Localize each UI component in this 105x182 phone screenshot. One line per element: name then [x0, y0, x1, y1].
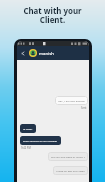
- staticText: hi sister: [23, 127, 33, 130]
- button[interactable]: Hey , i am very excited!: [55, 96, 88, 105]
- staticText: I need an app only video: [56, 169, 85, 172]
- button[interactable]: what services do you provide: [20, 136, 61, 145]
- staticText: Sent: [81, 106, 87, 110]
- staticText: 9:42 PM: [21, 146, 31, 150]
- button[interactable]: Profile photo: [29, 49, 37, 57]
- staticText: Chat with your Client.: [0, 6, 105, 26]
- staticText: manish: [39, 50, 54, 56]
- staticText: what services do you provide: [23, 139, 58, 142]
- staticText: Hey , i am very excited!: [58, 99, 85, 102]
- button[interactable]: are you also video or music ?: [48, 152, 88, 161]
- button[interactable]: hi sister: [20, 124, 36, 133]
- button[interactable]: Back: [19, 49, 27, 57]
- button[interactable]: I need an app only video: [53, 166, 88, 175]
- staticText: are you also video or music ?: [51, 155, 85, 158]
